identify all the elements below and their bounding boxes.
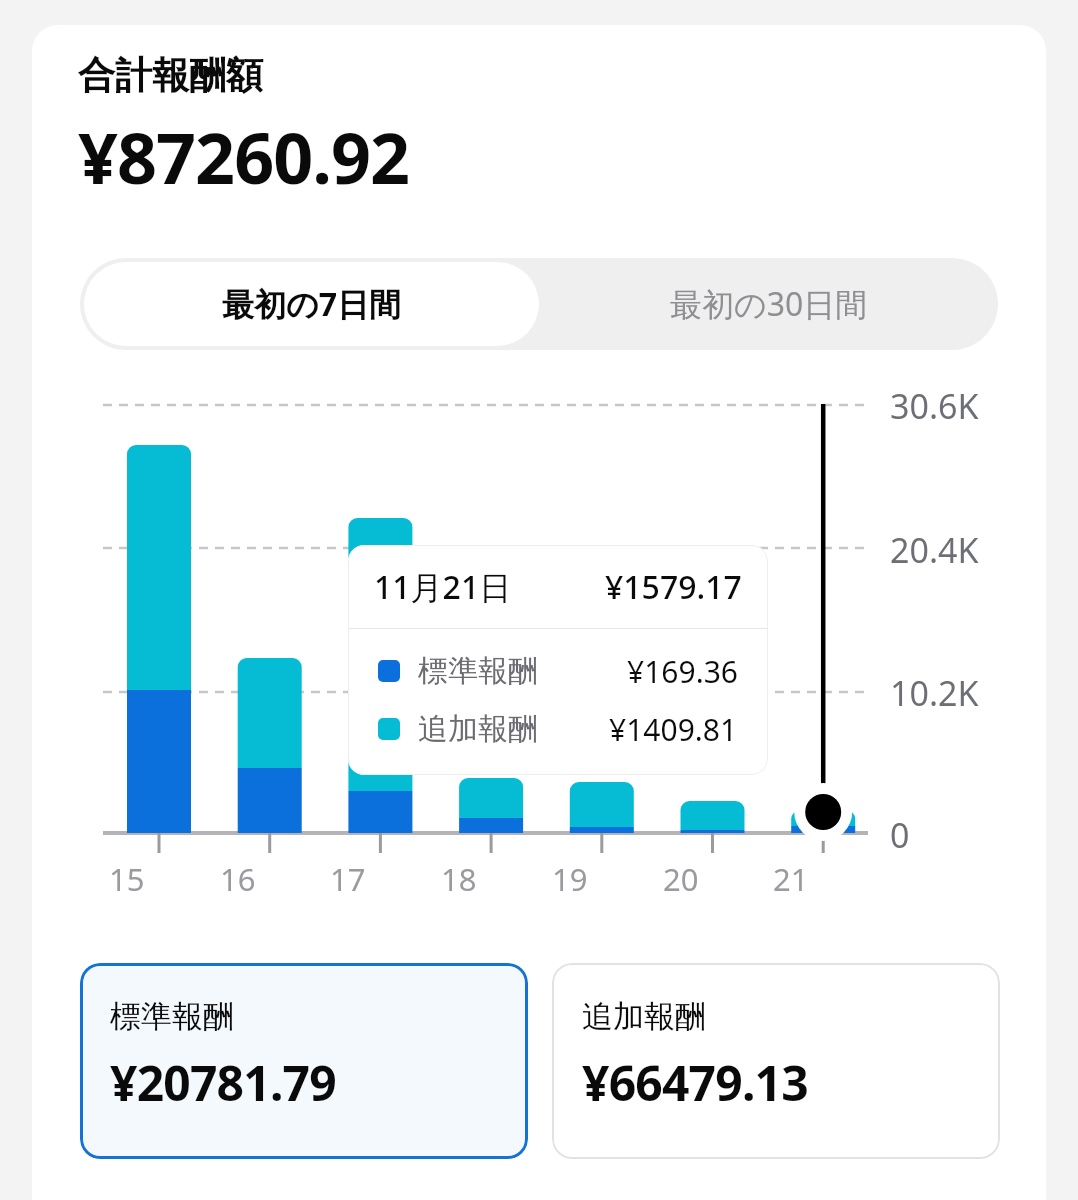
button[interactable]: 最初の30日間 [539,258,998,350]
staticText: ¥1579.17 [605,565,742,609]
staticText: ¥20781.79 [110,1050,336,1115]
staticText: 10.2K [890,670,979,716]
button[interactable]: 標準報酬 [80,963,528,1159]
button[interactable]: 最初の7日間 [84,262,539,346]
staticText: ¥66479.13 [582,1050,808,1115]
staticText: 21 [773,858,809,900]
staticText: ¥1409.81 [609,709,738,750]
staticText: 追加報酬 [582,997,706,1036]
staticText: 19 [552,858,588,900]
staticText: 16 [220,858,256,900]
staticText: 11月21日 [374,565,512,609]
staticText: 0 [890,812,910,858]
staticText: 標準報酬 [418,652,538,690]
staticText: ¥169.36 [627,651,738,692]
staticText: 追加報酬 [418,710,538,748]
staticText: 30.6K [890,383,979,429]
staticText: 18 [441,858,477,900]
staticText: 17 [330,858,366,900]
staticText: 最初の7日間 [222,282,402,326]
staticText: 20 [663,858,699,900]
staticText: 合計報酬額 [78,52,263,99]
button[interactable]: 追加報酬 [552,963,1000,1159]
staticText: 標準報酬 [110,997,234,1036]
staticText: 15 [109,858,145,900]
staticText: 最初の30日間 [670,282,868,326]
staticText: 20.4K [890,527,979,573]
staticText: ¥87260.92 [78,109,409,204]
